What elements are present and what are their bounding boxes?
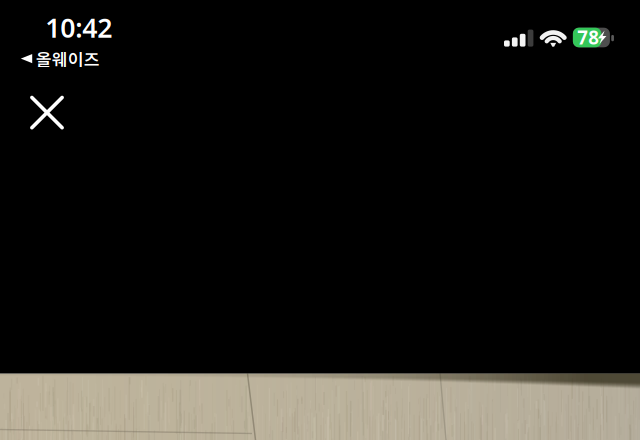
button[interactable]: Close: [22, 88, 72, 138]
staticText: 올웨이즈: [36, 46, 100, 71]
staticText: 78: [577, 25, 599, 50]
staticText: 10:42: [45, 10, 112, 45]
button[interactable]: 올웨이즈: [21, 46, 141, 71]
